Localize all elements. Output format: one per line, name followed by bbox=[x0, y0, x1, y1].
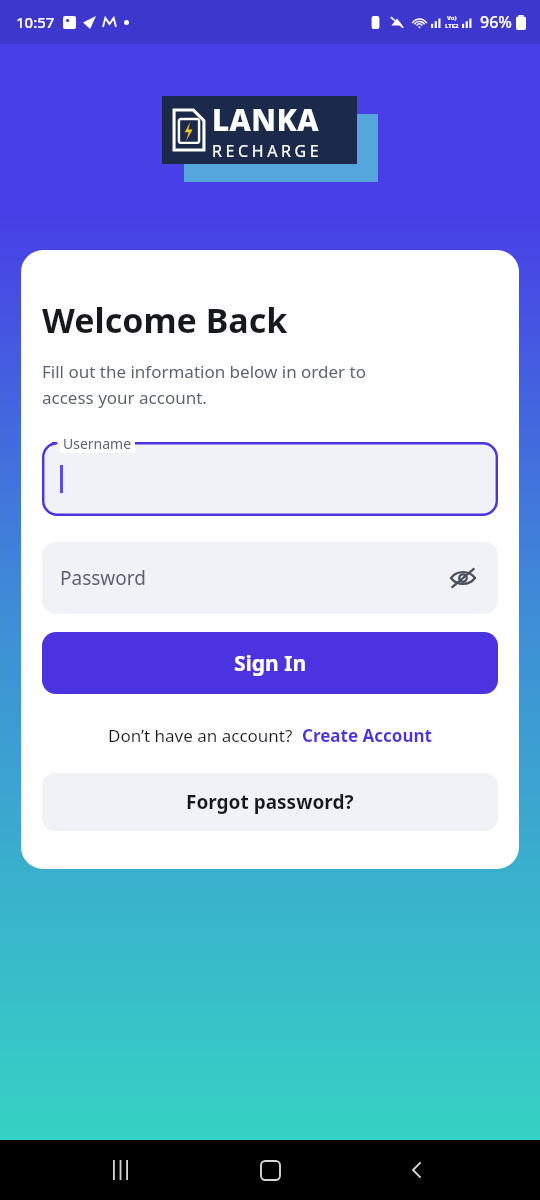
staticText: Vo) bbox=[447, 14, 457, 22]
staticText: Sign In bbox=[234, 649, 307, 678]
staticText: Username bbox=[63, 434, 132, 453]
staticText: Password bbox=[60, 565, 146, 591]
button[interactable]: Home bbox=[246, 1146, 294, 1194]
button[interactable]: Create Account bbox=[302, 724, 432, 747]
button[interactable]: Username bbox=[42, 434, 498, 516]
staticText: 96% bbox=[480, 11, 512, 33]
button[interactable]: Show password bbox=[446, 561, 480, 595]
button[interactable]: Recents bbox=[99, 1146, 147, 1194]
button[interactable]: Sign In bbox=[42, 632, 498, 694]
button[interactable]: Forgot password? bbox=[42, 773, 498, 831]
staticText: LTE2 bbox=[445, 22, 459, 30]
staticText: RECHARGE bbox=[212, 140, 323, 162]
staticText: 10:57 bbox=[16, 12, 55, 32]
staticText: Create Account bbox=[302, 724, 432, 747]
button[interactable]: Back bbox=[393, 1146, 441, 1194]
button[interactable]: Password bbox=[42, 542, 498, 614]
staticText: Fill out the information below in order … bbox=[42, 360, 366, 409]
staticText: Don’t have an account? bbox=[108, 724, 293, 747]
staticText: Forgot password? bbox=[186, 789, 354, 815]
staticText: LANKA bbox=[212, 99, 320, 140]
staticText: Welcome Back bbox=[42, 297, 288, 343]
